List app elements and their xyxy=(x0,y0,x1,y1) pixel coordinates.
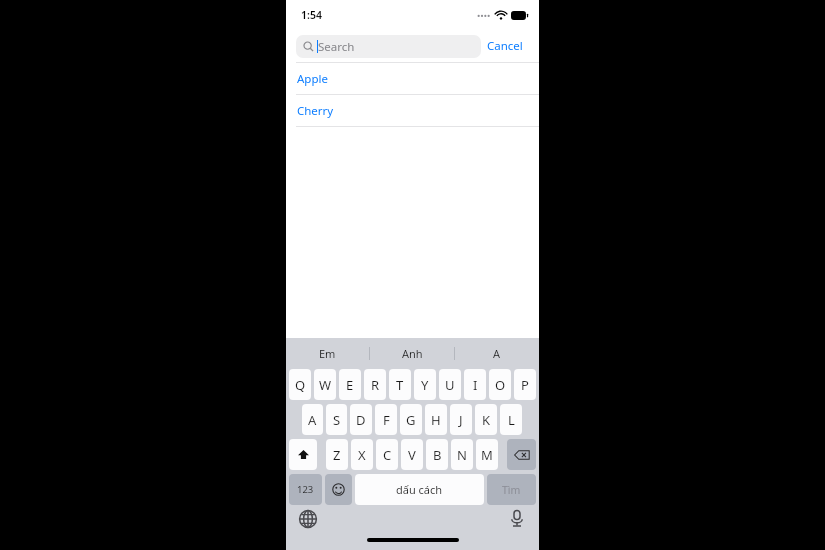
staticText: G xyxy=(406,411,416,429)
button[interactable]: E xyxy=(339,369,361,400)
staticText: C xyxy=(383,446,392,464)
staticText: 123 xyxy=(297,483,314,496)
staticText: Cancel xyxy=(487,38,523,54)
staticText: Em xyxy=(319,346,336,361)
button[interactable]: 123 xyxy=(289,474,322,505)
button[interactable]: P xyxy=(514,369,536,400)
button[interactable]: A xyxy=(302,404,323,435)
staticText: V xyxy=(408,446,416,464)
button[interactable]: I xyxy=(464,369,486,400)
staticText: J xyxy=(459,411,463,429)
staticText: X xyxy=(358,446,366,464)
staticText: K xyxy=(482,411,491,429)
staticText: Search xyxy=(318,39,355,55)
staticText: N xyxy=(457,446,467,464)
button[interactable]: O xyxy=(489,369,511,400)
staticText: Anh xyxy=(402,346,423,361)
staticText: Apple xyxy=(297,71,328,87)
staticText: F xyxy=(383,411,390,429)
button[interactable]: dấu cách xyxy=(355,474,484,505)
button[interactable]: V xyxy=(401,439,423,470)
button[interactable]: G xyxy=(400,404,422,435)
staticText: W xyxy=(319,376,332,394)
staticText: R xyxy=(371,376,380,394)
button[interactable]: R xyxy=(364,369,386,400)
button[interactable]: N xyxy=(451,439,473,470)
button[interactable]: L xyxy=(500,404,522,435)
staticText: T xyxy=(396,376,404,394)
button[interactable]: Cherry xyxy=(286,95,539,126)
button[interactable]: Apple xyxy=(286,63,539,94)
staticText: B xyxy=(433,446,442,464)
button[interactable]: Em xyxy=(286,338,369,369)
staticText: P xyxy=(521,376,529,394)
button[interactable]: Y xyxy=(414,369,436,400)
staticText: Tìm xyxy=(502,483,521,497)
button[interactable]: Anh xyxy=(370,338,454,369)
button[interactable]: J xyxy=(450,404,472,435)
staticText: Y xyxy=(421,376,429,394)
button[interactable]: H xyxy=(425,404,447,435)
button[interactable]: Dictation xyxy=(507,508,527,528)
staticText: O xyxy=(495,376,506,394)
button[interactable]: T xyxy=(389,369,411,400)
staticText: A xyxy=(493,346,501,361)
staticText: A xyxy=(308,411,317,429)
button[interactable]: Backspace xyxy=(507,439,536,470)
button[interactable]: A xyxy=(455,338,539,369)
button[interactable]: W xyxy=(314,369,336,400)
staticText: D xyxy=(356,411,366,429)
staticText: U xyxy=(445,376,455,394)
button[interactable]: Emoji xyxy=(325,474,352,505)
staticText: L xyxy=(508,411,515,429)
staticText: S xyxy=(333,411,341,429)
staticText: I xyxy=(473,376,478,394)
button[interactable]: Tìm xyxy=(487,474,536,505)
staticText: H xyxy=(431,411,441,429)
button[interactable]: Search xyxy=(296,35,481,58)
button[interactable]: Z xyxy=(326,439,348,470)
button[interactable]: C xyxy=(376,439,398,470)
button[interactable]: M xyxy=(476,439,498,470)
button[interactable]: Shift xyxy=(289,439,317,470)
button[interactable]: Q xyxy=(289,369,311,400)
staticText: Q xyxy=(295,376,306,394)
button[interactable]: X xyxy=(351,439,373,470)
staticText: Z xyxy=(333,446,341,464)
staticText: dấu cách xyxy=(396,482,443,497)
button[interactable]: D xyxy=(350,404,372,435)
button[interactable]: K xyxy=(475,404,497,435)
button[interactable]: Cancel xyxy=(481,34,529,58)
staticText: M xyxy=(481,446,493,464)
button[interactable]: S xyxy=(326,404,347,435)
button[interactable]: U xyxy=(439,369,461,400)
staticText: 1:54 xyxy=(301,8,322,22)
staticText: Cherry xyxy=(297,103,334,119)
button[interactable]: F xyxy=(375,404,397,435)
staticText: E xyxy=(346,376,354,394)
button[interactable]: B xyxy=(426,439,448,470)
button[interactable]: Change keyboard language xyxy=(298,509,318,529)
